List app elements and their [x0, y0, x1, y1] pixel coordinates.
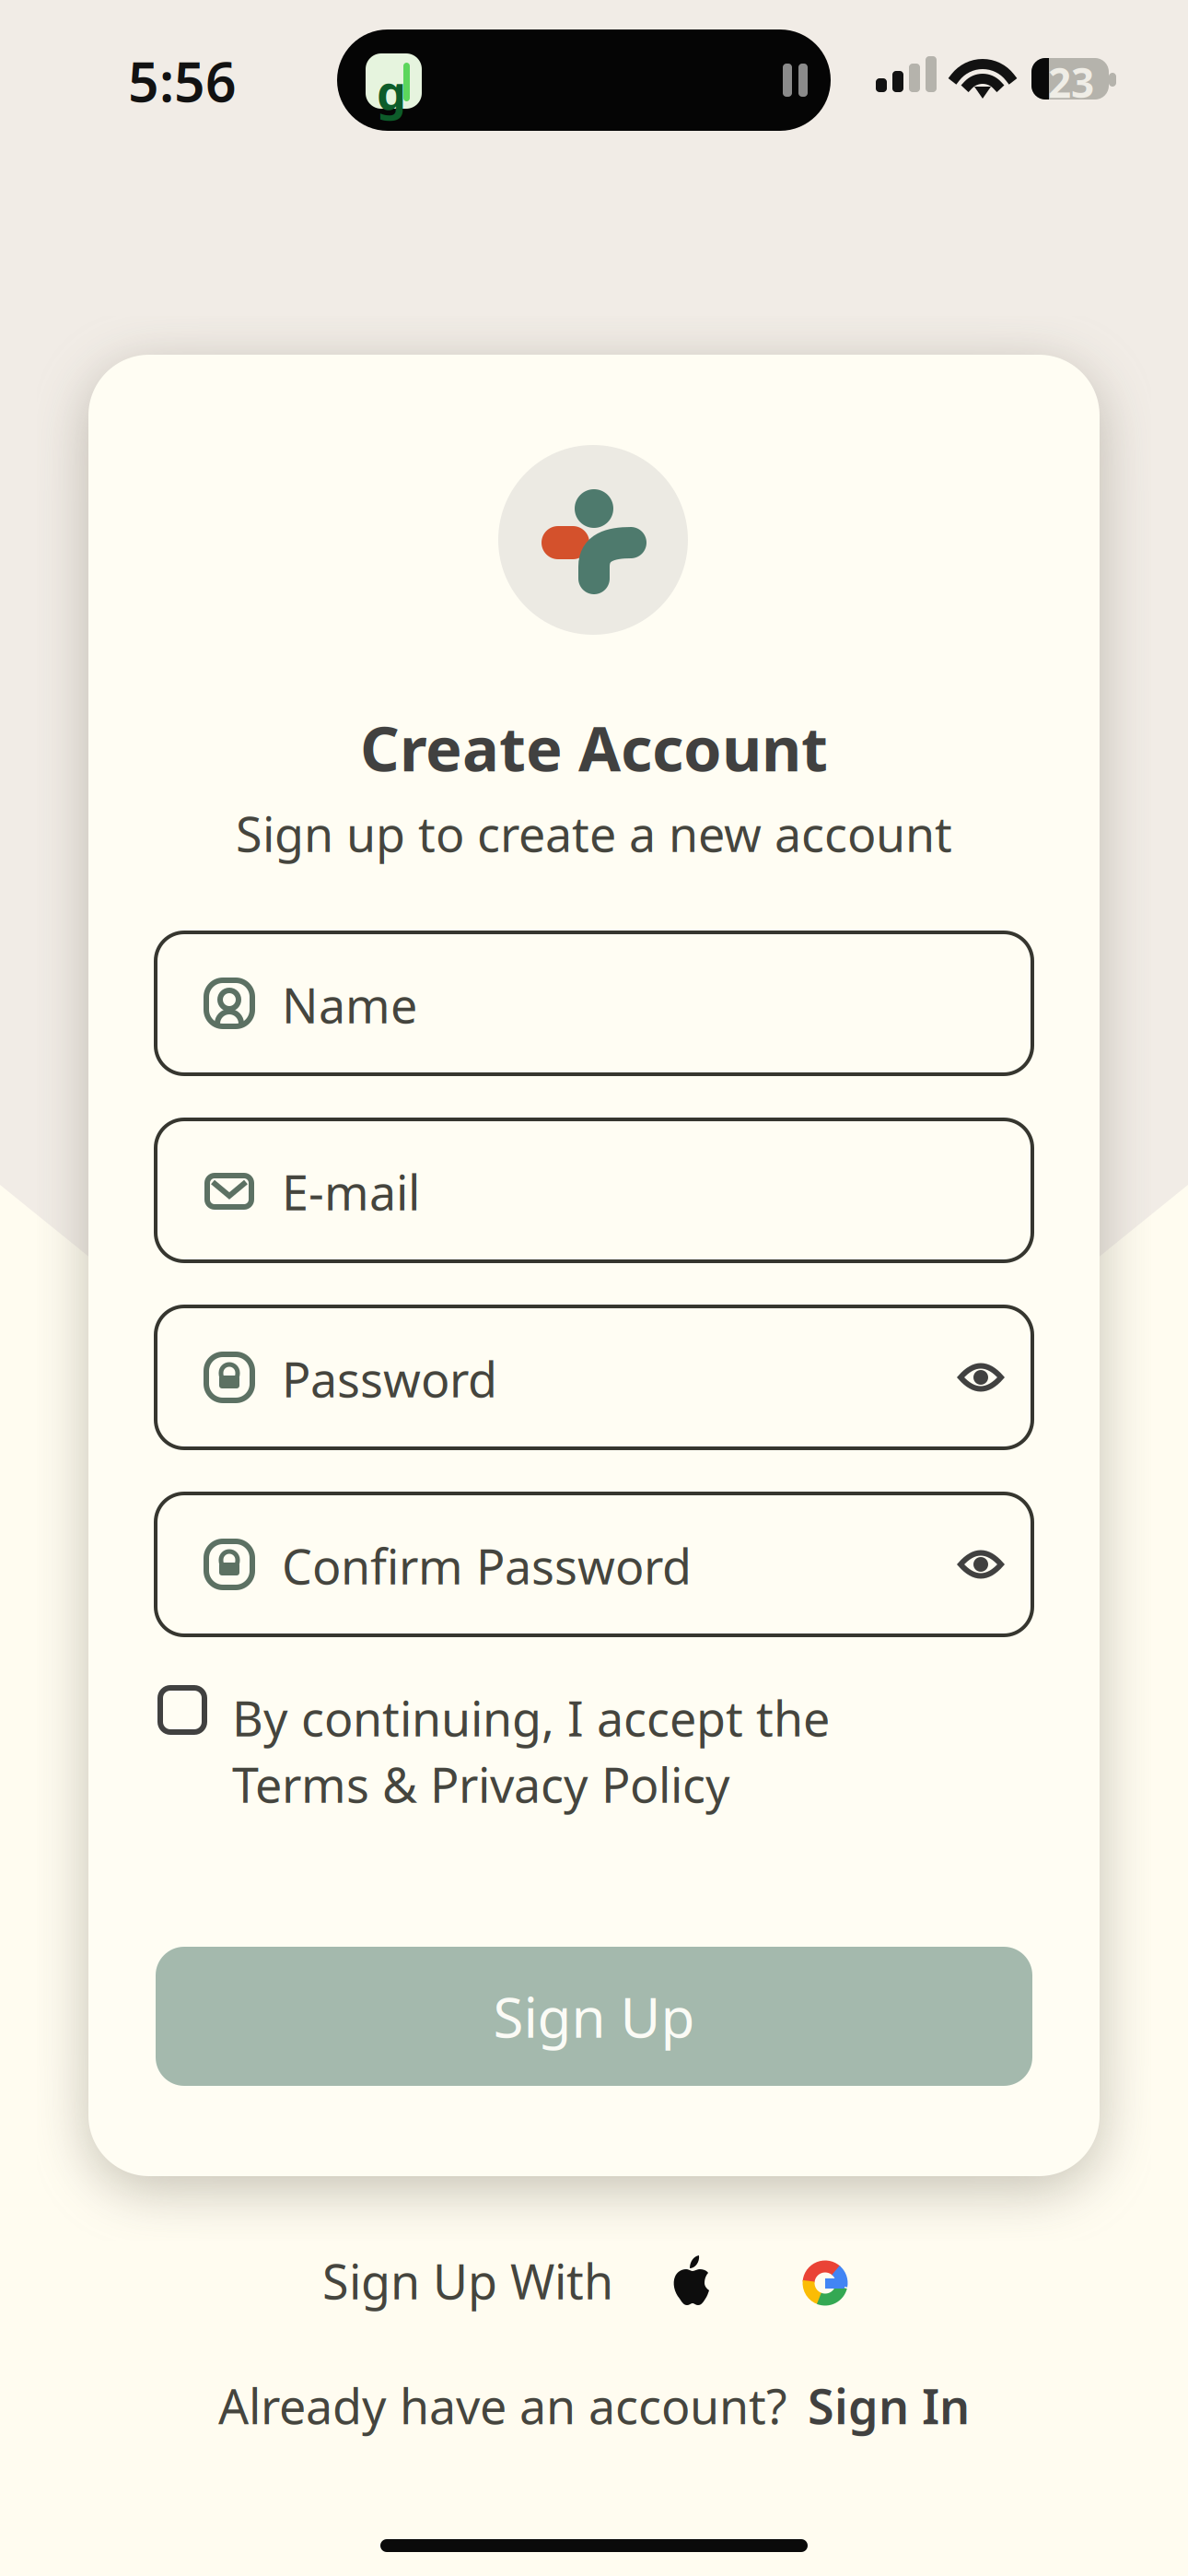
staticText: Create Account	[360, 707, 828, 788]
button[interactable]: Sign up with Apple	[670, 2255, 716, 2307]
staticText: g	[377, 61, 406, 123]
staticText: Already have an account?	[218, 2374, 787, 2437]
staticText: Sign Up With	[322, 2249, 613, 2313]
staticText: By continuing, I accept the	[232, 1686, 830, 1750]
button[interactable]: Sign up with Google	[802, 2260, 848, 2306]
staticText: Sign up to create a new account	[236, 802, 952, 865]
staticText: Sign In	[808, 2374, 970, 2437]
button[interactable]: Password	[156, 1306, 1032, 1448]
staticText: Sign Up	[493, 1980, 695, 2053]
button[interactable]: Confirm Password	[156, 1493, 1032, 1635]
staticText: E-mail	[282, 1160, 420, 1224]
staticText: Password	[282, 1347, 497, 1411]
button[interactable]: Already have an account?	[88, 2377, 1100, 2434]
button[interactable]: E-mail	[156, 1119, 1032, 1261]
button[interactable]: Sign Up	[156, 1947, 1032, 2086]
staticText: 23	[1048, 55, 1094, 109]
staticText: Name	[282, 973, 417, 1037]
staticText: Terms & Privacy Policy	[232, 1752, 730, 1816]
button[interactable]: Name	[156, 932, 1032, 1074]
staticText: 5:56	[128, 45, 237, 117]
staticText: Confirm Password	[282, 1534, 692, 1598]
button[interactable]: By continuing, I accept the	[157, 1686, 1013, 1815]
